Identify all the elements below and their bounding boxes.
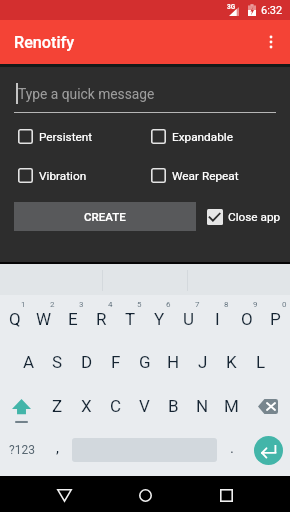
staticText: T <box>125 309 136 329</box>
staticText: Q <box>9 309 21 329</box>
button[interactable]: Persistent <box>18 129 93 144</box>
button[interactable]: L <box>246 340 275 384</box>
staticText: C <box>110 396 122 416</box>
staticText: A <box>23 352 35 372</box>
button[interactable]: R <box>87 295 116 338</box>
staticText: W <box>36 309 52 329</box>
button[interactable]: Y <box>145 295 174 338</box>
staticText: P <box>270 309 281 329</box>
button[interactable]: X <box>72 384 101 428</box>
button[interactable]: A <box>14 340 43 384</box>
button[interactable]: , <box>43 428 72 472</box>
button[interactable]: . <box>217 428 246 472</box>
staticText: 3 <box>79 300 84 309</box>
staticText: I <box>215 309 220 329</box>
button[interactable]: D <box>72 340 101 384</box>
button[interactable]: W <box>29 295 58 338</box>
button[interactable]: Enter <box>246 428 290 472</box>
button[interactable]: Close app <box>207 209 281 225</box>
button[interactable]: U <box>174 295 203 338</box>
staticText: U <box>183 309 195 329</box>
button[interactable]: Back <box>40 476 88 512</box>
staticText: Persistent <box>39 130 93 144</box>
staticText: ?123 <box>9 443 35 457</box>
staticText: O <box>241 309 253 329</box>
staticText: 6:32 <box>261 4 283 17</box>
staticText: Z <box>52 396 63 416</box>
button[interactable]: CREATE <box>14 202 196 231</box>
button[interactable]: Recents <box>202 476 250 512</box>
staticText: 7 <box>195 300 200 309</box>
button[interactable]: V <box>130 384 159 428</box>
button[interactable]: I <box>203 295 232 338</box>
button[interactable]: H <box>159 340 188 384</box>
button[interactable]: P <box>261 295 290 338</box>
staticText: F <box>111 352 121 372</box>
staticText: R <box>96 309 107 329</box>
button[interactable]: More options <box>252 20 290 64</box>
button[interactable]: F <box>101 340 130 384</box>
staticText: V <box>139 396 150 416</box>
staticText: Y <box>154 309 165 329</box>
button[interactable]: S <box>43 340 72 384</box>
staticText: 4 <box>108 300 113 309</box>
staticText: Type a quick message <box>18 86 155 102</box>
staticText: Renotify <box>14 33 75 52</box>
button[interactable]: E <box>58 295 87 338</box>
staticText: Wear Repeat <box>172 169 239 183</box>
staticText: 9 <box>253 300 258 309</box>
staticText: 0 <box>282 300 287 309</box>
staticText: 2 <box>50 300 55 309</box>
staticText: X <box>81 396 92 416</box>
staticText: D <box>81 352 93 372</box>
button[interactable]: Wear Repeat <box>151 168 239 183</box>
staticText: S <box>52 352 63 372</box>
button[interactable]: Shift <box>0 384 43 428</box>
button[interactable]: B <box>159 384 188 428</box>
button[interactable]: Home <box>121 476 169 512</box>
staticText: 3G <box>227 3 236 11</box>
staticText: CREATE <box>84 210 126 223</box>
button[interactable]: N <box>188 384 217 428</box>
staticText: . <box>230 439 234 457</box>
button[interactable]: Vibration <box>18 168 87 183</box>
button[interactable]: K <box>217 340 246 384</box>
staticText: 6 <box>166 300 171 309</box>
staticText: G <box>139 352 151 372</box>
staticText: B <box>168 396 179 416</box>
staticText: 8 <box>224 300 229 309</box>
staticText: J <box>198 352 208 372</box>
button[interactable]: Expandable <box>151 129 233 144</box>
staticText: N <box>196 396 209 416</box>
staticText: L <box>256 352 266 372</box>
button[interactable]: J <box>188 340 217 384</box>
button[interactable]: T <box>116 295 145 338</box>
staticText: Close app <box>228 210 281 224</box>
button[interactable]: G <box>130 340 159 384</box>
staticText: E <box>68 309 78 329</box>
button[interactable]: M <box>217 384 246 428</box>
staticText: 1 <box>21 300 26 309</box>
button[interactable]: Backspace <box>246 384 290 428</box>
staticText: 5 <box>137 300 142 309</box>
staticText: K <box>226 352 237 372</box>
button[interactable]: Z <box>43 384 72 428</box>
button[interactable]: O <box>232 295 261 338</box>
staticText: , <box>56 439 59 457</box>
staticText: Vibration <box>39 169 87 183</box>
button[interactable]: Q <box>0 295 29 338</box>
button[interactable]: C <box>101 384 130 428</box>
staticText: Expandable <box>172 130 233 144</box>
staticText: H <box>167 352 180 372</box>
staticText: M <box>224 396 239 416</box>
button[interactable]: ?123 <box>0 428 43 472</box>
